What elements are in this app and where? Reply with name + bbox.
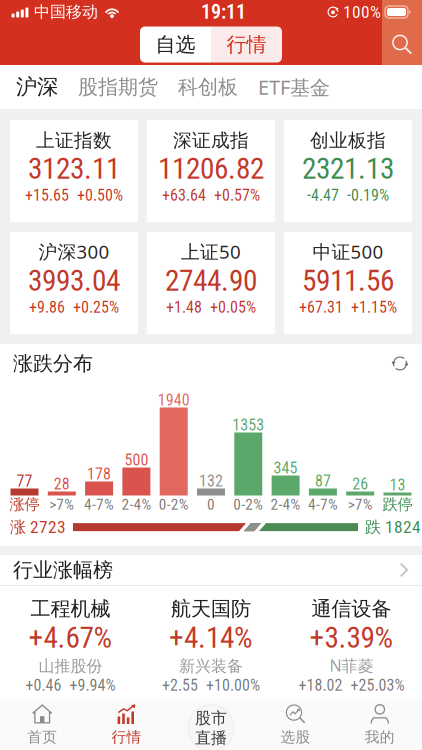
staticText: 1824 xyxy=(385,517,421,537)
staticText: 77 xyxy=(16,472,32,490)
staticText: 新兴装备 xyxy=(179,656,243,676)
staticText: 28 xyxy=(54,475,70,493)
button[interactable]: 沪深300 xyxy=(10,232,138,334)
staticText: 3993.04 xyxy=(28,264,120,298)
staticText: >7% xyxy=(348,495,373,513)
staticText: +0.50% xyxy=(77,186,123,205)
button[interactable]: 通信设备 xyxy=(281,586,422,699)
staticText: 2-4% xyxy=(271,495,301,513)
button[interactable]: 工程机械 xyxy=(0,586,141,699)
staticText: 1353 xyxy=(232,416,264,434)
staticText: 0 xyxy=(207,495,215,513)
staticText: 行业涨幅榜 xyxy=(13,558,113,582)
staticText: 创业板指 xyxy=(310,129,386,152)
staticText: -4.47 xyxy=(307,186,339,205)
staticText: >7% xyxy=(49,495,74,513)
button[interactable]: 上证50 xyxy=(147,232,275,334)
button[interactable]: 航天国防 xyxy=(141,586,281,699)
button[interactable]: ETF基金 xyxy=(240,74,332,100)
staticText: 选股 xyxy=(280,728,310,746)
staticText: 跌 xyxy=(365,517,381,537)
staticText: 87 xyxy=(315,472,331,490)
staticText: +63.64 xyxy=(162,186,206,205)
staticText: 首页 xyxy=(27,728,57,746)
staticText: 13 xyxy=(389,476,405,494)
button[interactable]: 沪深 xyxy=(14,74,60,100)
staticText: 科创板 xyxy=(178,75,238,99)
staticText: +4.67% xyxy=(28,621,112,655)
staticText: -0.19% xyxy=(347,186,389,205)
staticText: 沪深 xyxy=(16,74,58,100)
staticText: 2744.90 xyxy=(165,264,257,298)
staticText: +0.57% xyxy=(214,186,260,205)
button[interactable]: Refresh xyxy=(391,354,409,372)
staticText: +1.15% xyxy=(351,298,397,317)
staticText: 航天国防 xyxy=(171,596,251,621)
staticText: +0.25% xyxy=(73,298,119,317)
staticText: 跌停 xyxy=(382,495,412,514)
button[interactable]: 首页 xyxy=(0,699,84,750)
staticText: 股市 xyxy=(195,708,227,728)
staticText: 中证500 xyxy=(312,239,383,264)
staticText: 上证指数 xyxy=(36,129,112,152)
staticText: 直播 xyxy=(195,728,227,748)
staticText: 0-2% xyxy=(233,495,263,513)
button[interactable]: Search xyxy=(382,24,422,65)
staticText: 4-7% xyxy=(308,495,338,513)
staticText: 178 xyxy=(87,465,111,483)
staticText: 中国移动 xyxy=(34,2,98,22)
staticText: 11206.82 xyxy=(158,152,264,186)
staticText: +67.31 xyxy=(299,298,343,317)
staticText: +3.39% xyxy=(310,621,394,655)
button[interactable]: 股市 xyxy=(188,705,234,750)
staticText: 通信设备 xyxy=(312,596,392,621)
staticText: +0.46 xyxy=(25,676,61,695)
button[interactable]: 股指期货 xyxy=(60,75,160,99)
button[interactable]: 行情 xyxy=(84,699,169,750)
button[interactable]: 选股 xyxy=(253,699,338,750)
staticText: 涨 xyxy=(10,517,26,537)
staticText: +4.14% xyxy=(169,621,253,655)
staticText: 1940 xyxy=(158,391,190,409)
staticText: +1.48 xyxy=(166,298,202,317)
staticText: +25.03% xyxy=(351,676,405,695)
button[interactable]: 深证成指 xyxy=(147,120,275,222)
staticText: 深证成指 xyxy=(173,129,249,152)
staticText: 132 xyxy=(199,472,223,490)
staticText: 我的 xyxy=(365,728,395,746)
staticText: 2723 xyxy=(30,517,66,537)
staticText: 2321.13 xyxy=(302,152,394,186)
staticText: 股指期货 xyxy=(78,75,158,99)
staticText: +2.55 xyxy=(162,676,198,695)
staticText: +15.65 xyxy=(25,186,69,205)
staticText: +18.02 xyxy=(299,676,343,695)
staticText: 沪深300 xyxy=(38,239,109,264)
staticText: 自选 xyxy=(155,32,195,57)
button[interactable]: 中证500 xyxy=(284,232,412,334)
button[interactable]: 自选 xyxy=(140,26,211,62)
button[interactable]: 科创板 xyxy=(160,75,240,99)
staticText: 5911.56 xyxy=(302,264,394,298)
staticText: 500 xyxy=(124,451,148,469)
staticText: 345 xyxy=(274,459,298,477)
staticText: 行情 xyxy=(112,728,142,746)
staticText: 100% xyxy=(343,2,381,22)
button[interactable]: 我的 xyxy=(338,699,422,750)
staticText: N菲菱 xyxy=(330,655,374,676)
staticText: ETF基金 xyxy=(258,74,330,100)
staticText: 上证50 xyxy=(181,239,241,264)
staticText: 涨跌分布 xyxy=(13,351,93,376)
staticText: 行情 xyxy=(226,32,266,57)
button[interactable]: 行业涨幅榜 xyxy=(0,555,422,585)
button[interactable]: 上证指数 xyxy=(10,120,138,222)
staticText: 2-4% xyxy=(121,495,151,513)
staticText: 0-2% xyxy=(159,495,189,513)
button[interactable]: 创业板指 xyxy=(284,120,412,222)
staticText: 19:11 xyxy=(201,0,246,24)
staticText: +0.05% xyxy=(210,298,256,317)
button[interactable]: 行情 xyxy=(211,26,282,62)
staticText: 山推股份 xyxy=(38,656,102,676)
staticText: 4-7% xyxy=(84,495,114,513)
staticText: +10.00% xyxy=(206,676,260,695)
staticText: +9.86 xyxy=(29,298,65,317)
